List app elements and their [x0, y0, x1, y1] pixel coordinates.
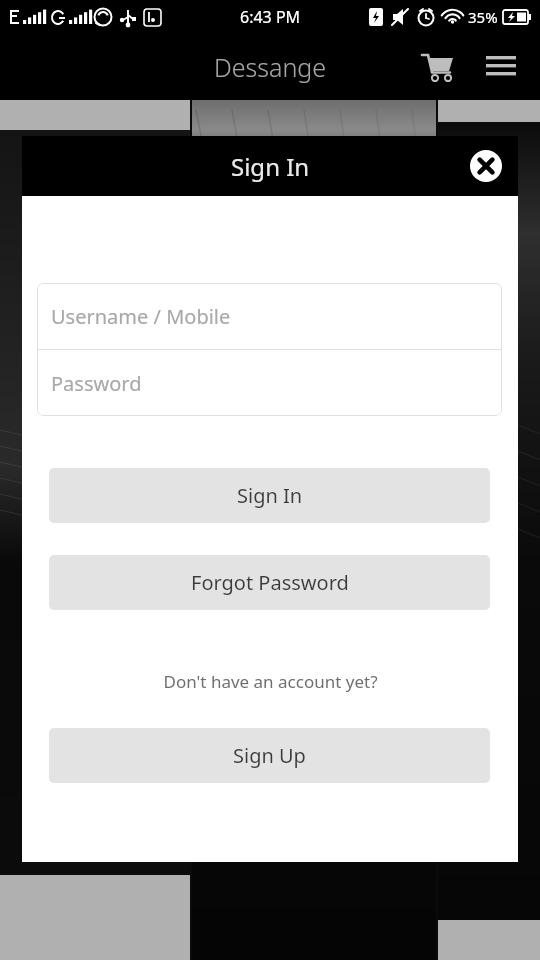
button[interactable]: Sign In [49, 468, 490, 523]
staticText: 6:43 PM [240, 6, 301, 28]
staticText: Password [51, 370, 142, 397]
staticText: Sign In [237, 482, 303, 509]
staticText: Sign Up [233, 742, 306, 769]
staticText: 35% [468, 7, 498, 27]
button[interactable]: Username / Mobile [37, 283, 502, 349]
staticText: Username / Mobile [51, 303, 231, 330]
button[interactable]: Menu [476, 42, 526, 92]
staticText: Sign In [231, 150, 310, 183]
button[interactable]: Password [37, 350, 502, 416]
button[interactable]: Cart [412, 41, 464, 93]
button[interactable]: Close [468, 148, 504, 184]
button[interactable]: Sign Up [49, 728, 490, 783]
staticText: Forgot Password [191, 569, 349, 596]
button[interactable]: Forgot Password [49, 555, 490, 610]
staticText: Don't have an account yet? [163, 670, 378, 693]
staticText: Dessange [214, 50, 327, 84]
